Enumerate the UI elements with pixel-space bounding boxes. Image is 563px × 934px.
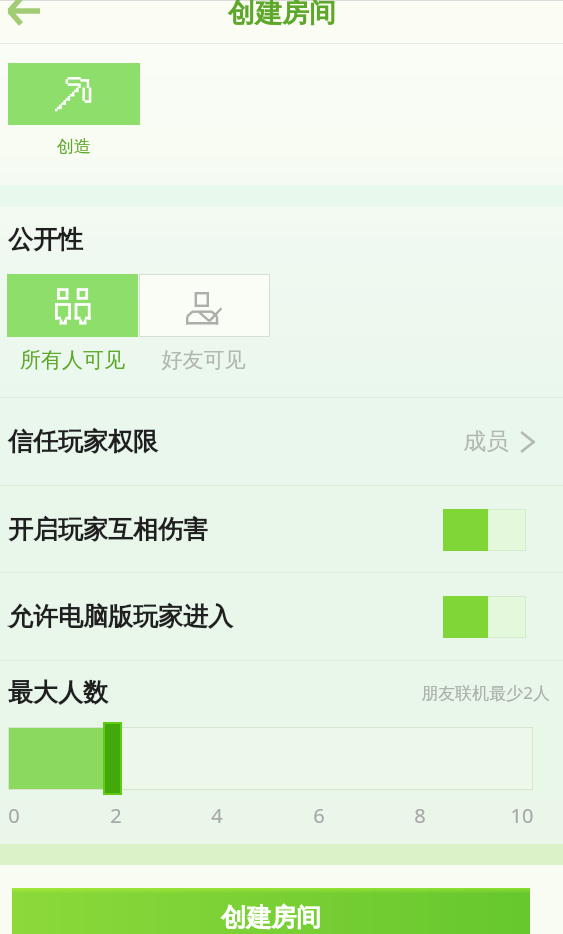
staticText: 4 (201, 802, 233, 829)
button[interactable]: 创建房间 (12, 888, 530, 934)
button[interactable]: 信任玩家权限 (0, 398, 563, 485)
button[interactable]: Toggle 允许电脑版玩家进入 (443, 596, 526, 638)
staticText: 6 (303, 802, 335, 829)
staticText: 允许电脑版玩家进入 (8, 601, 233, 632)
staticText: 10 (506, 802, 538, 829)
staticText: 开启玩家互相伤害 (8, 514, 208, 545)
button[interactable]: Max players slider (103, 722, 122, 795)
staticText: 朋友联机最少2人 (0, 681, 550, 704)
staticText: 创建房间 (221, 902, 321, 933)
button[interactable] (139, 274, 270, 337)
staticText: 创建房间 (228, 0, 336, 30)
staticText: 8 (404, 802, 436, 829)
staticText: 公开性 (8, 224, 83, 255)
button[interactable] (7, 274, 138, 337)
staticText: 0 (0, 802, 30, 829)
staticText: 成员 (463, 427, 509, 456)
button[interactable] (8, 63, 140, 125)
button[interactable]: Back (0, 0, 48, 35)
staticText: 最大人数 (8, 677, 108, 708)
staticText: 好友可见 (138, 347, 269, 373)
staticText: 2 (100, 802, 132, 829)
staticText: 信任玩家权限 (8, 426, 158, 457)
staticText: 创造 (8, 136, 140, 157)
button[interactable]: Toggle 开启玩家互相伤害 (443, 509, 526, 551)
staticText: 所有人可见 (7, 347, 138, 373)
